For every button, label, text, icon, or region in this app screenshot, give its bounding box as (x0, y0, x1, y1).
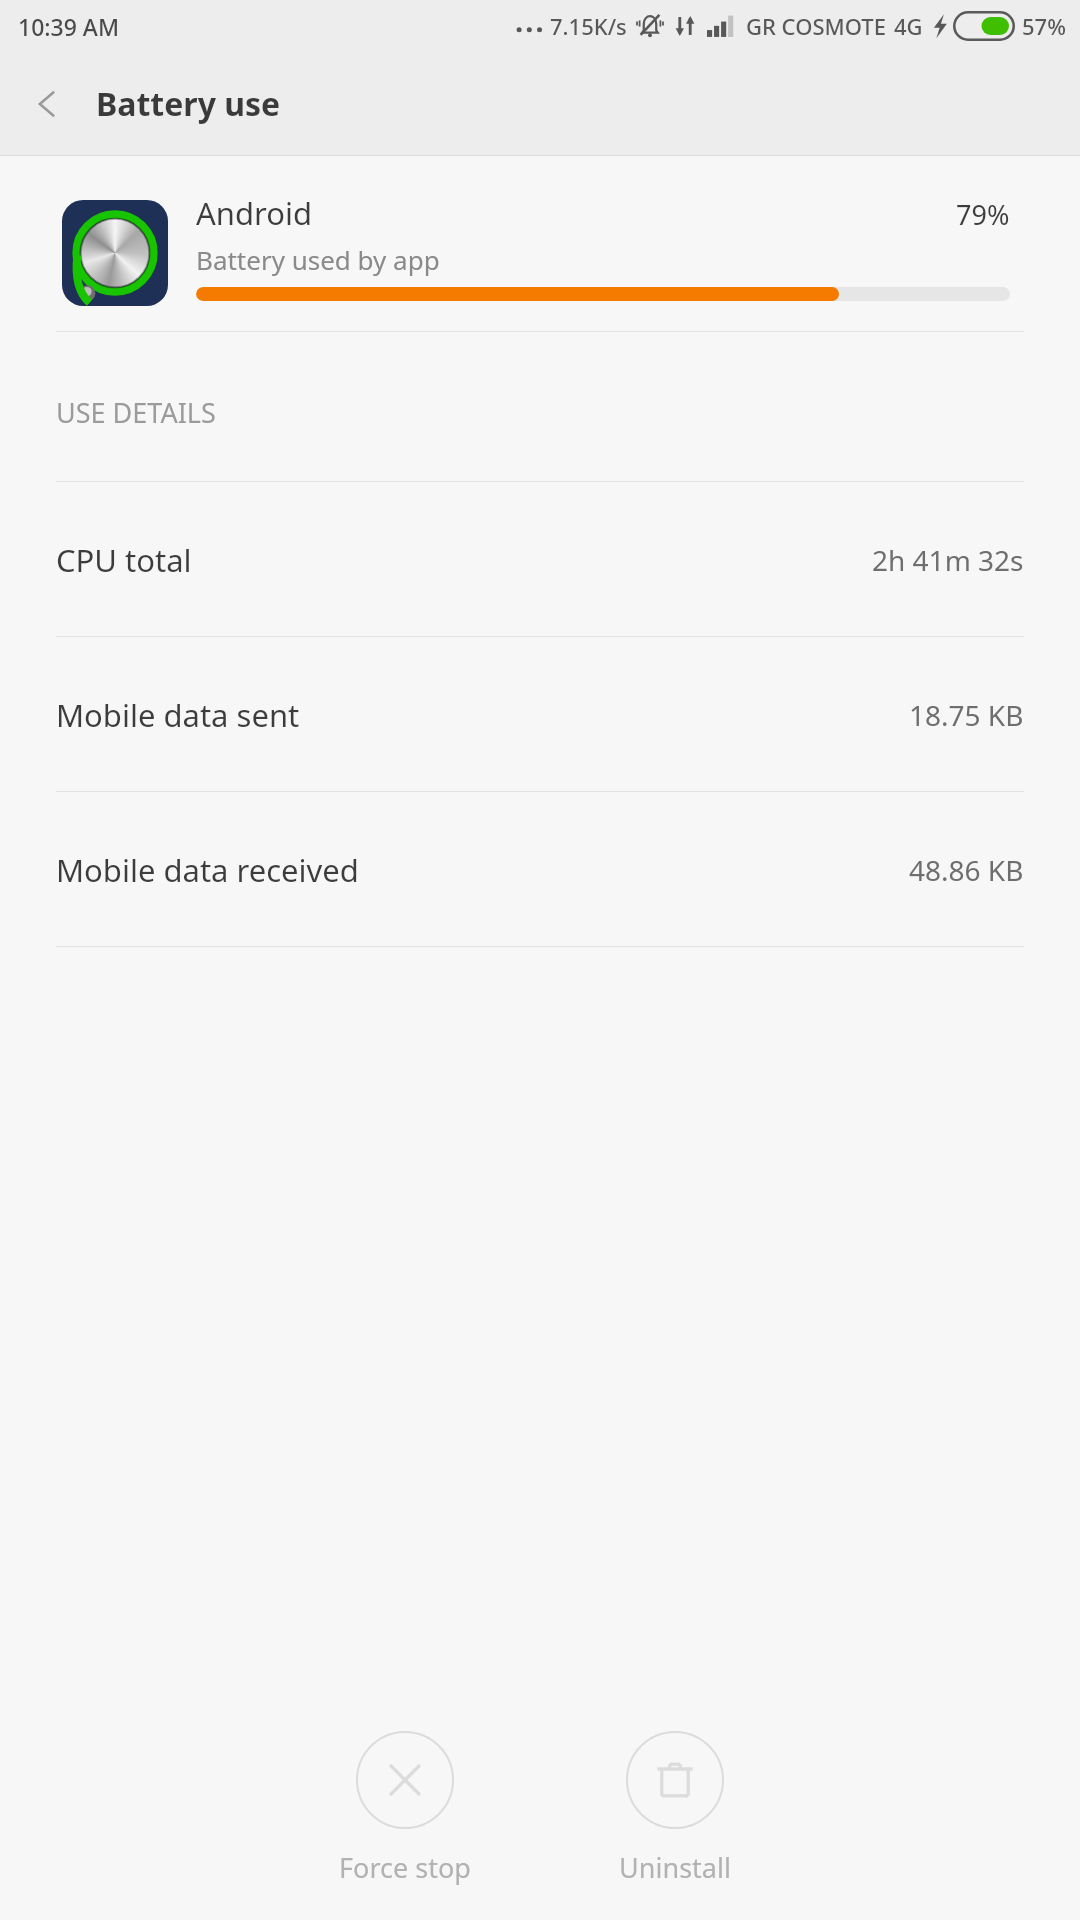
staticText: 7.15K/s (550, 11, 627, 41)
button[interactable]: Back (12, 68, 84, 140)
staticText: Uninstall (619, 1849, 731, 1886)
staticText: 57% (1022, 11, 1066, 41)
staticText: 79% (956, 196, 1010, 233)
staticText: Android (196, 192, 313, 234)
staticText: 4G (894, 11, 923, 41)
staticText: Mobile data sent (56, 694, 300, 736)
staticText: USE DETAILS (56, 394, 216, 431)
staticText: Battery use (96, 82, 281, 126)
staticText: Battery used by app (196, 242, 440, 277)
button[interactable]: Mobile data sent (0, 637, 1080, 792)
button[interactable]: Uninstall (575, 1731, 775, 1886)
button[interactable]: CPU total (0, 482, 1080, 637)
staticText: Force stop (339, 1849, 471, 1886)
button[interactable]: Mobile data received (0, 792, 1080, 947)
staticText: 2h 41m 32s (872, 541, 1024, 579)
button[interactable]: Force stop (305, 1731, 505, 1886)
staticText: GR COSMOTE (746, 11, 886, 41)
staticText: 18.75 KB (909, 696, 1024, 734)
staticText: 10:39 AM (18, 11, 120, 42)
staticText: 48.86 KB (909, 851, 1024, 889)
staticText: Mobile data received (56, 849, 359, 891)
staticText: CPU total (56, 539, 192, 581)
